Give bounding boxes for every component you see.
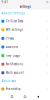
button[interactable]: Privacy (0, 34, 50, 43)
button[interactable]: Notifications (0, 60, 50, 68)
staticText: Notifications (6, 62, 23, 66)
staticText: Wifi settings (6, 28, 23, 31)
button[interactable]: Wifi settings (0, 25, 50, 34)
button[interactable]: Time usage (0, 51, 50, 60)
button[interactable]: Recent apps (11, 96, 13, 98)
button[interactable]: Back (37, 96, 39, 98)
staticText: Privacy (6, 37, 14, 40)
staticText: lıl ᯤ ▮ (46, 1, 48, 3)
staticText: About app (1, 79, 16, 83)
button[interactable]: Friendship (0, 85, 50, 93)
staticText: 9:41 (2, 0, 9, 4)
button[interactable]: Cellular Data (0, 17, 50, 25)
staticText: Account settings (1, 11, 24, 15)
staticText: Time usage (6, 54, 21, 57)
staticText: Accounts (6, 45, 18, 49)
button[interactable]: Accounts (0, 43, 50, 51)
button[interactable]: Multi account (0, 68, 50, 77)
staticText: Friendship (6, 87, 21, 91)
staticText: Settings (19, 5, 30, 8)
staticText: Cellular Data (6, 19, 23, 23)
button[interactable]: Home (24, 96, 26, 98)
staticText: Multi account (6, 71, 24, 74)
